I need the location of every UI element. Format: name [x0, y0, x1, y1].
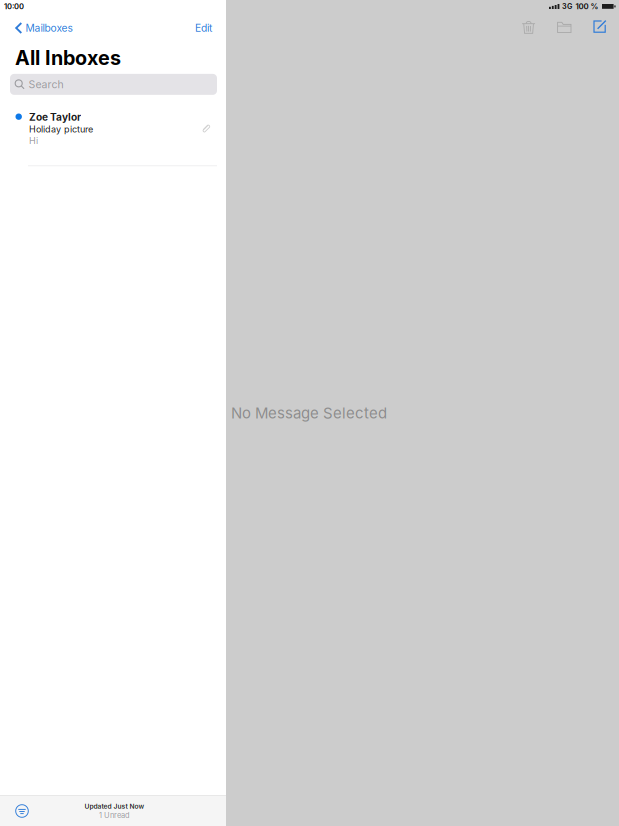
staticText: Holiday picture [29, 124, 93, 135]
staticText: All Inboxes [15, 46, 121, 70]
staticText: No Message Selected [231, 404, 387, 422]
button[interactable]: Zoe Taylor [0, 95, 226, 166]
staticText: 10:00 [4, 2, 24, 11]
staticText: Zoe Taylor [29, 111, 81, 123]
staticText: 100 % [575, 2, 598, 11]
button[interactable]: Move to folder [547, 20, 583, 33]
staticText: Updated Just Now [84, 802, 144, 810]
staticText: Search [28, 78, 63, 91]
button[interactable]: Mailboxes [0, 19, 72, 37]
staticText: Edit [195, 22, 212, 34]
button[interactable]: Compose [583, 20, 617, 34]
staticText: Mailboxes [25, 22, 72, 34]
staticText: 3G [562, 2, 572, 11]
button[interactable]: Search [10, 74, 217, 95]
button[interactable]: Delete [512, 20, 547, 34]
button[interactable]: Edit [195, 19, 226, 37]
staticText: 1 Unread [99, 811, 130, 820]
button[interactable]: Filter [0, 796, 29, 826]
staticText: Hi [29, 135, 38, 146]
